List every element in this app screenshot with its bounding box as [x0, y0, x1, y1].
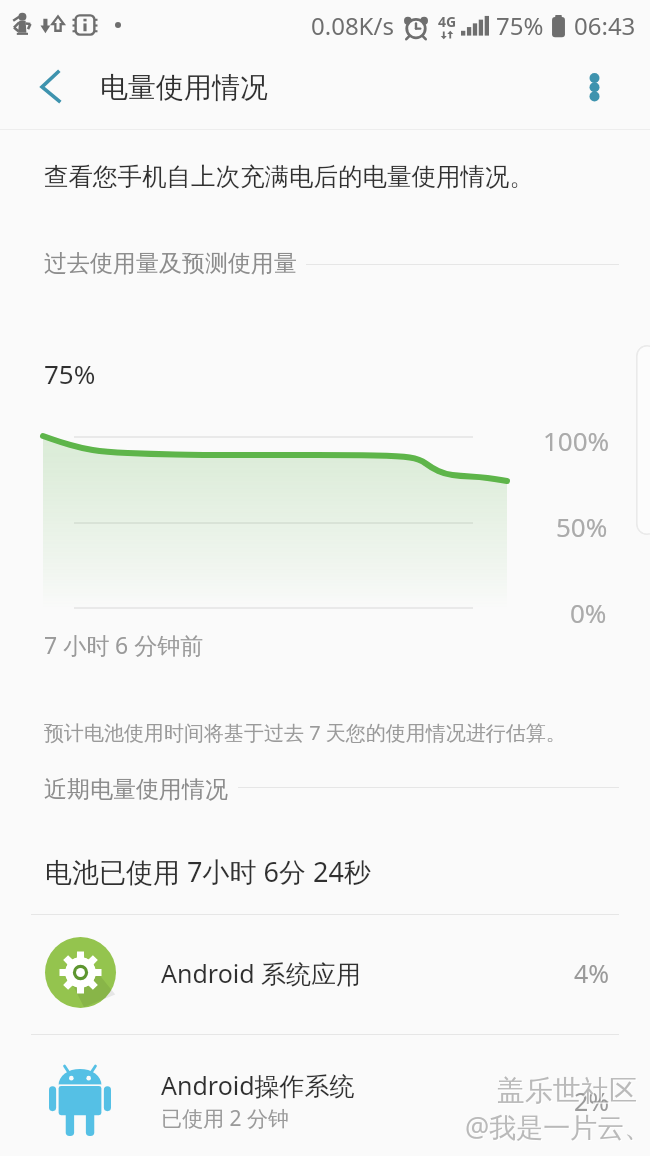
staticText: 已使用 2 分钟 — [161, 1104, 289, 1133]
staticText: 盖乐世社区 — [498, 1074, 638, 1109]
staticText: 75% — [44, 356, 96, 391]
staticText: 电池已使用 7小时 6分 24秒 — [45, 853, 371, 890]
staticText: @我是一片云、 — [465, 1108, 650, 1145]
button[interactable]: More options — [572, 65, 616, 109]
staticText: 预计电池使用时间将基于过去 7 天您的使用情况进行估算。 — [44, 719, 566, 746]
staticText: 06:43 — [574, 9, 636, 42]
staticText: 近期电量使用情况 — [44, 775, 228, 804]
staticText: 0.08K/s — [311, 9, 394, 42]
staticText: 4% — [574, 956, 610, 990]
staticText: 盖乐世社区 — [497, 1073, 637, 1108]
staticText: 50% — [556, 509, 608, 544]
staticText: 100% — [543, 423, 610, 458]
staticText: 7 小时 6 分钟前 — [44, 629, 204, 660]
staticText: 75% — [496, 9, 544, 42]
staticText: 2% — [574, 1084, 610, 1118]
staticText: 过去使用量及预测使用量 — [44, 249, 297, 278]
staticText: 查看您手机自上次充满电后的电量使用情况。 — [44, 161, 534, 192]
staticText: 电量使用情况 — [100, 70, 268, 105]
staticText: @我是一片云、 — [466, 1109, 650, 1146]
staticText: 4G — [438, 12, 457, 31]
button[interactable]: Android操作系统 — [0, 1035, 650, 1156]
staticText: 0% — [570, 595, 607, 630]
button[interactable]: Back — [20, 61, 72, 113]
button[interactable]: Android 系统应用 — [0, 913, 650, 1032]
staticText: Android操作系统 — [161, 1068, 355, 1102]
staticText: Android 系统应用 — [161, 956, 362, 990]
